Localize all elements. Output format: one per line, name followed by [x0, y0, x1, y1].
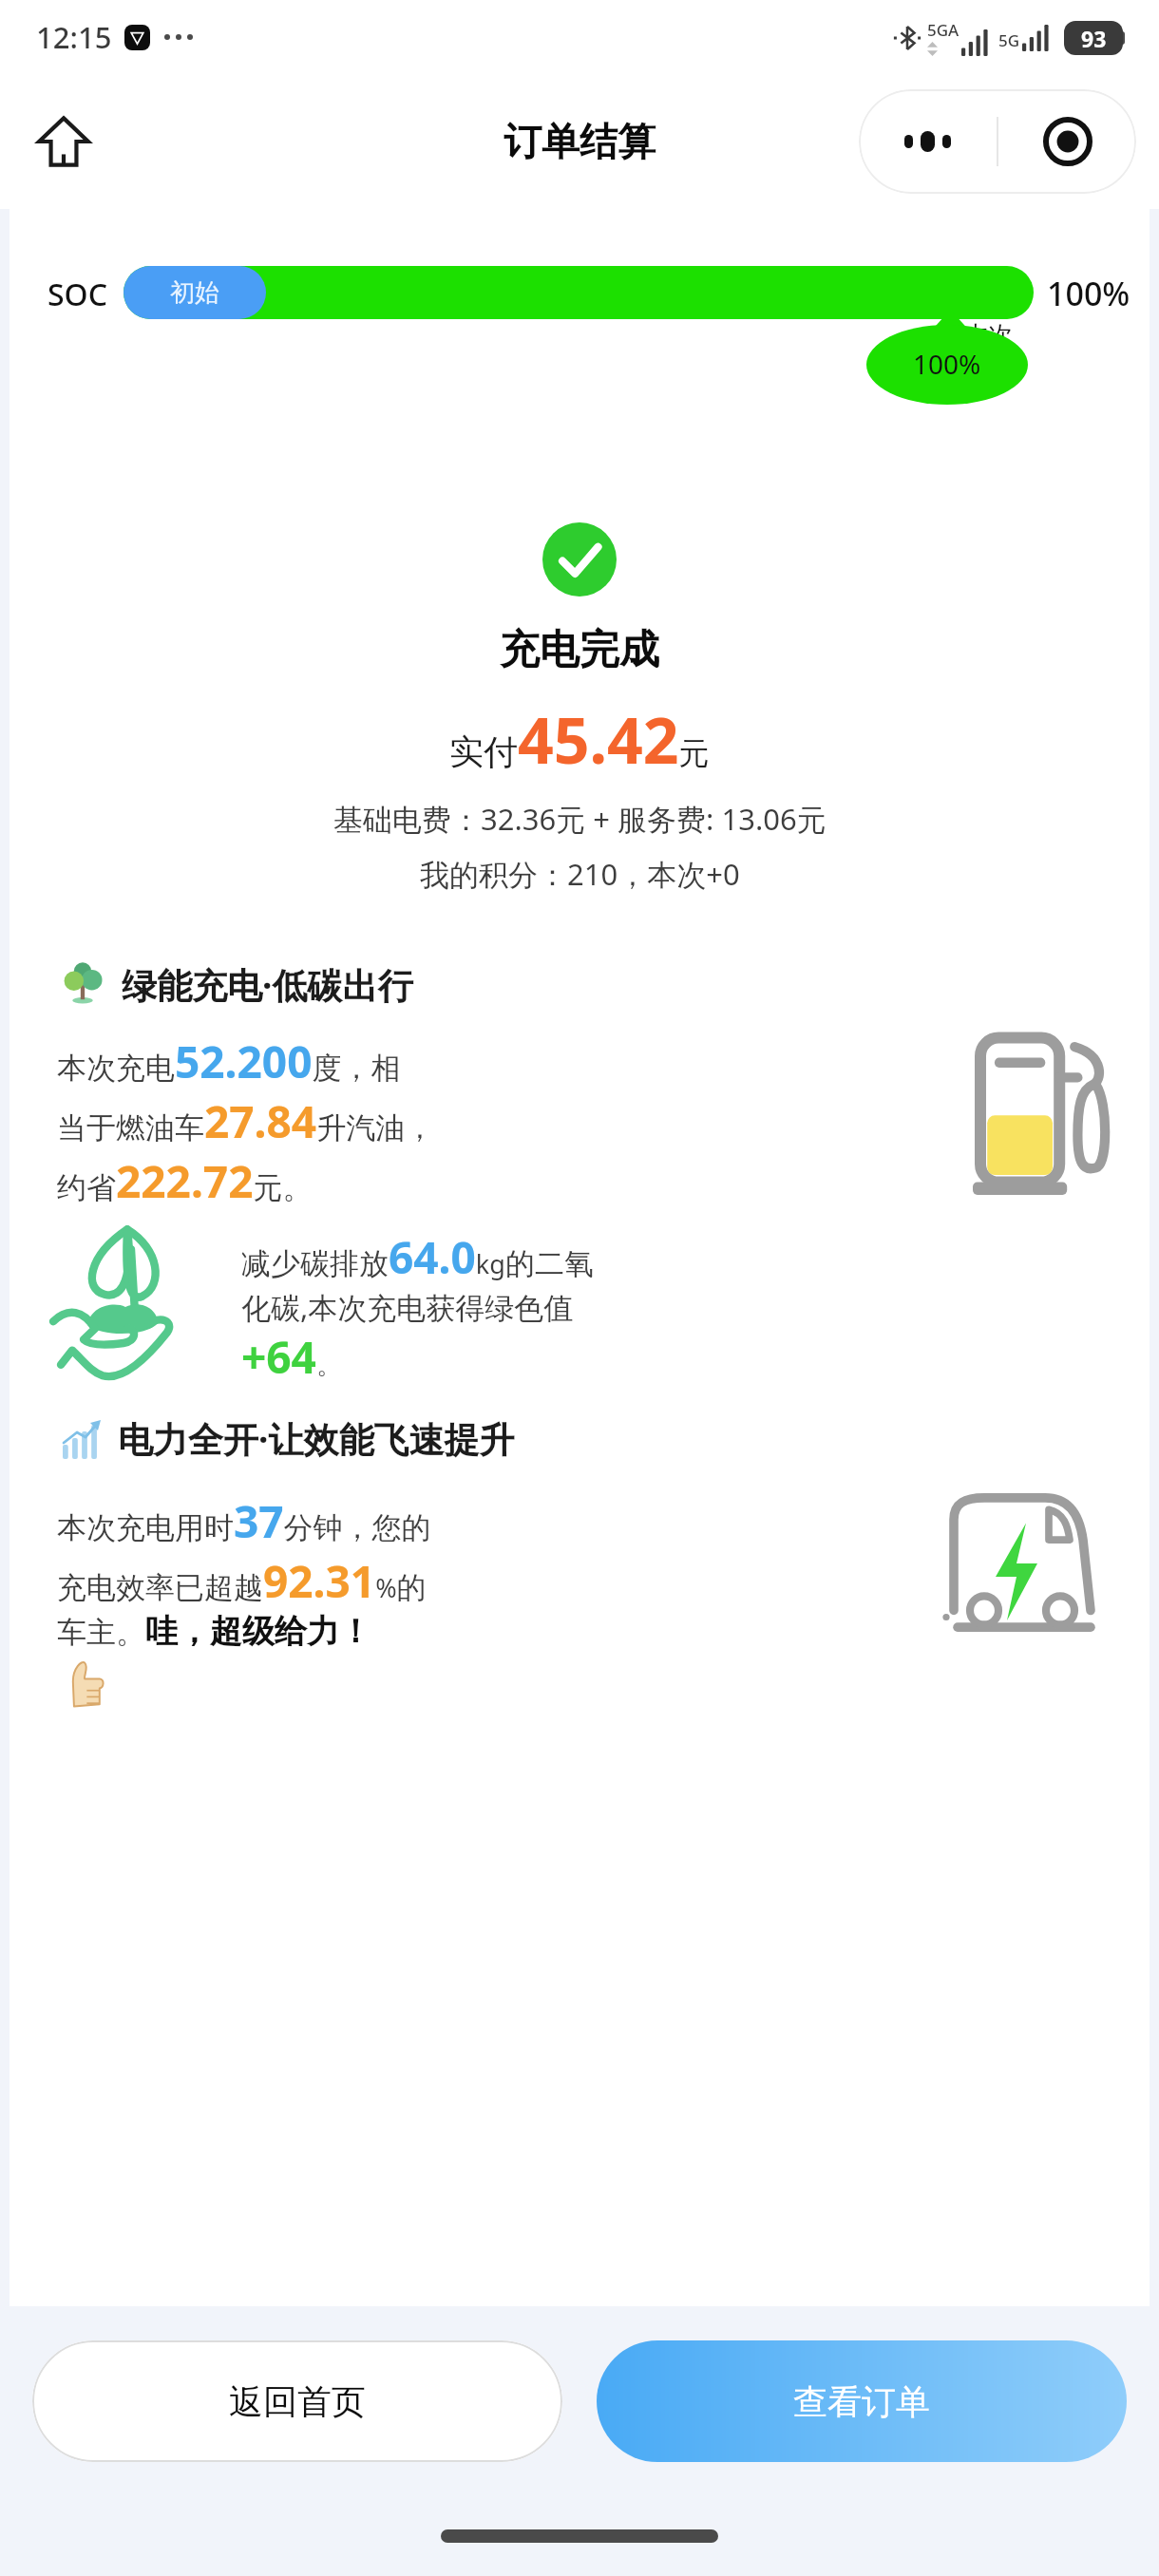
- staticText: 初始: [170, 277, 219, 309]
- staticText: SOC: [47, 274, 108, 315]
- staticText: 本次充电用时37分钟，您的: [57, 1491, 431, 1551]
- staticText: 93: [1081, 24, 1107, 53]
- staticText: 100%: [913, 346, 981, 382]
- staticText: 5GA: [927, 19, 959, 41]
- staticText: 12:15: [36, 17, 112, 57]
- button[interactable]: 查看订单: [597, 2340, 1127, 2462]
- staticText: 查看订单: [793, 2380, 930, 2423]
- staticText: 返回首页: [229, 2380, 366, 2423]
- staticText: 基础电费：32.36元 + 服务费: 13.06元: [333, 799, 826, 839]
- staticText: 订单结算: [503, 118, 655, 165]
- button[interactable]: More: [859, 89, 997, 194]
- staticText: 约省222.72元。: [57, 1151, 313, 1211]
- button[interactable]: 返回首页: [32, 2340, 562, 2462]
- staticText: 100%: [1047, 272, 1130, 315]
- staticText: 减少碳排放64.0kg的二氧: [241, 1227, 594, 1287]
- staticText: 本次充电52.200度，相: [57, 1032, 401, 1091]
- staticText: 5G: [998, 29, 1020, 51]
- button[interactable]: Close: [998, 89, 1136, 194]
- staticText: 充电效率已超越92.31%的: [57, 1551, 427, 1611]
- staticText: 我的积分：210，本次+0: [420, 854, 740, 894]
- staticText: 车主。哇，超级给力！: [57, 1611, 371, 1652]
- staticText: 绿能充电·低碳出行: [122, 960, 413, 1009]
- staticText: 充电完成: [500, 625, 659, 675]
- button[interactable]: Home: [27, 104, 101, 179]
- staticText: 当于燃油车27.84升汽油，: [57, 1091, 435, 1151]
- staticText: 实付45.42元: [449, 696, 710, 782]
- staticText: 电力全开·让效能飞速提升: [118, 1414, 515, 1463]
- staticText: 本次: [963, 320, 1013, 351]
- staticText: +64。: [241, 1327, 342, 1387]
- staticText: 化碳,本次充电获得绿色值: [241, 1287, 574, 1327]
